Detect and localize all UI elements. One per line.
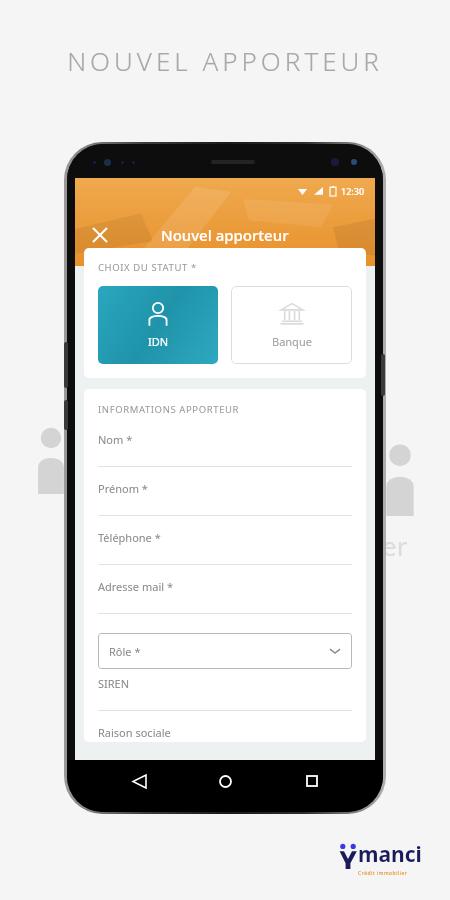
button[interactable]: Nom *: [98, 432, 352, 481]
button[interactable]: SIREN: [98, 676, 352, 725]
staticText: INFORMATIONS APPORTEUR: [98, 403, 240, 416]
button[interactable]: IDN: [98, 286, 218, 364]
button[interactable]: Adresse mail *: [98, 579, 352, 628]
staticText: IDN: [148, 334, 169, 349]
staticText: Prénom *: [98, 481, 148, 496]
staticText: SIREN: [98, 676, 130, 691]
button[interactable]: Back: [124, 766, 154, 796]
staticText: Rôle *: [109, 644, 141, 659]
staticText: NOUVEL APPORTEUR: [67, 43, 383, 78]
button[interactable]: Rôle *: [98, 633, 352, 669]
button[interactable]: Close: [85, 220, 115, 250]
button[interactable]: Recents: [297, 766, 327, 796]
staticText: Nom *: [98, 432, 133, 447]
staticText: Raison sociale: [98, 725, 171, 740]
staticText: Crédit immobilier: [358, 870, 408, 877]
staticText: er: [382, 528, 408, 563]
staticText: Nouvel apporteur: [161, 225, 289, 245]
button[interactable]: Home: [210, 766, 240, 796]
staticText: CHOIX DU STATUT *: [98, 261, 197, 274]
staticText: Adresse mail *: [98, 579, 173, 594]
staticText: 12:30: [341, 185, 365, 197]
button[interactable]: Banque: [231, 286, 352, 364]
staticText: Banque: [272, 334, 312, 349]
button[interactable]: Téléphone *: [98, 530, 352, 579]
staticText: Téléphone *: [98, 530, 161, 545]
staticText: manci: [358, 840, 422, 869]
button[interactable]: Prénom *: [98, 481, 352, 530]
